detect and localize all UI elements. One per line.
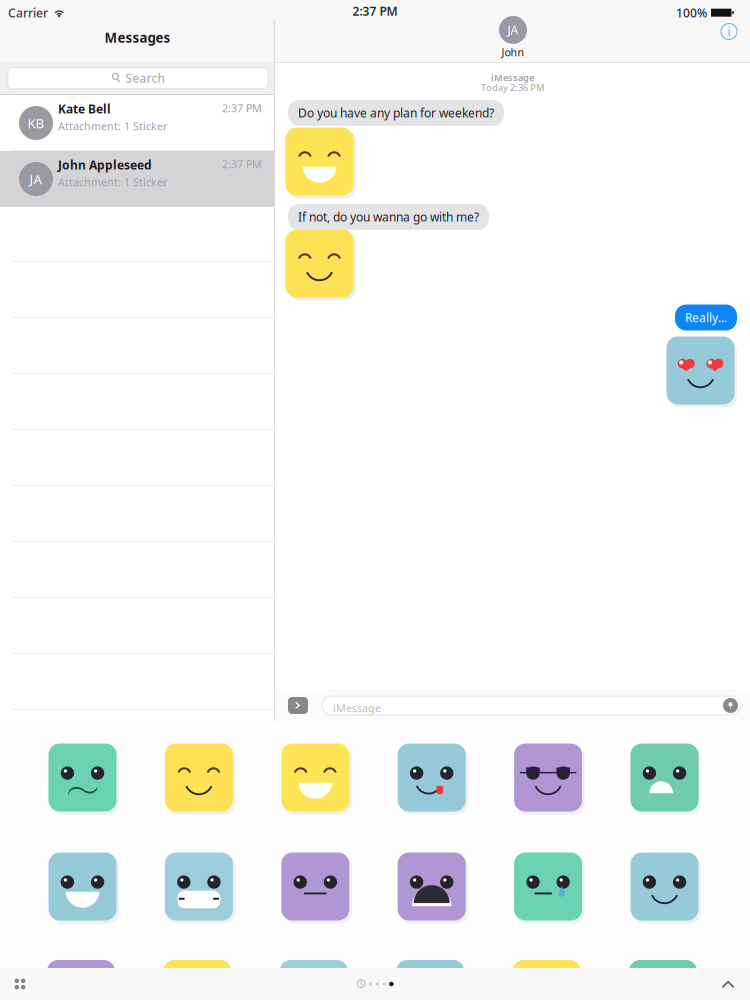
- staticText: 2:37 PM: [352, 3, 397, 19]
- button[interactable]: Search: [8, 67, 268, 88]
- button[interactable]: Sticker: [629, 742, 700, 813]
- staticText: Really...: [685, 309, 727, 325]
- staticText: Search: [125, 70, 164, 86]
- staticText: Do you have any plan for weekend?: [298, 105, 494, 121]
- button[interactable]: JA: [0, 151, 275, 207]
- button[interactable]: App Store: [288, 697, 308, 714]
- button[interactable]: Sticker: [280, 851, 351, 922]
- staticText: Attachment: 1 Sticker: [58, 175, 167, 189]
- button[interactable]: Apps: [6, 971, 34, 997]
- button[interactable]: Sticker: [163, 742, 234, 813]
- staticText: If not, do you wanna go with me?: [298, 209, 479, 225]
- staticText: 100%: [676, 5, 707, 21]
- button[interactable]: Sticker: [396, 851, 467, 922]
- staticText: 2:37 PM: [222, 101, 262, 115]
- button[interactable]: Expand: [713, 971, 743, 997]
- staticText: Attachment: 1 Sticker: [58, 119, 167, 133]
- staticText: Kate Bell: [58, 101, 111, 117]
- staticText: JA: [29, 170, 42, 188]
- staticText: Today 2:36 PM: [481, 81, 544, 94]
- staticText: John Appleseed: [58, 157, 152, 173]
- button[interactable]: Sticker: [47, 851, 118, 922]
- button[interactable]: KB: [0, 95, 275, 151]
- staticText: 2:37 PM: [222, 157, 262, 171]
- staticText: iMessage: [491, 71, 534, 84]
- staticText: John: [501, 45, 524, 59]
- button[interactable]: Details: [717, 19, 741, 43]
- staticText: JA: [507, 22, 518, 38]
- staticText: Messages: [104, 29, 170, 46]
- button[interactable]: Sticker: [47, 742, 118, 813]
- staticText: KB: [27, 114, 44, 132]
- staticText: i: [727, 23, 730, 39]
- button[interactable]: Message field: [322, 696, 740, 715]
- button[interactable]: Sticker: [163, 851, 234, 922]
- button[interactable]: Sticker: [629, 851, 700, 922]
- button[interactable]: Sticker: [513, 851, 584, 922]
- button[interactable]: Sticker: [396, 742, 467, 813]
- button[interactable]: Sticker: [513, 742, 584, 813]
- button[interactable]: Sticker: [280, 742, 351, 813]
- staticText: iMessage: [333, 701, 381, 715]
- staticText: Carrier: [8, 5, 48, 21]
